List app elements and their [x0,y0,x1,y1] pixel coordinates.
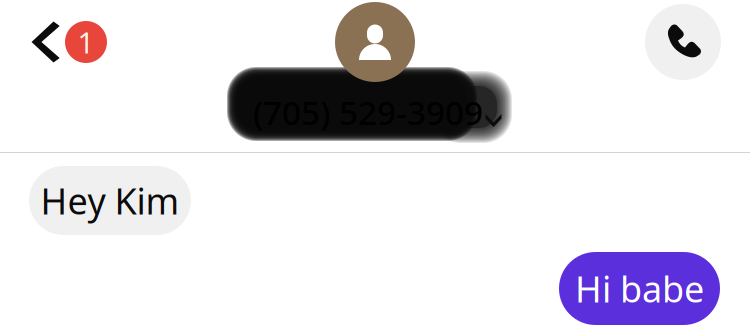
button[interactable]: Call [645,4,721,80]
button[interactable]: Back [0,0,121,84]
staticText: Hey Kim [40,177,179,224]
button[interactable]: Conversation details [476,104,511,137]
staticText: (705) 529-3909 [253,90,483,134]
staticText: Hi babe [575,265,704,312]
staticText: 1 [77,22,94,61]
